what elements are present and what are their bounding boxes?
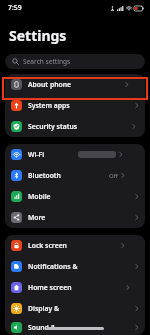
staticText: Settings xyxy=(9,26,67,45)
button[interactable]: More connectivity options xyxy=(5,207,145,228)
staticText: Security status xyxy=(28,122,78,131)
button[interactable]: Home screen xyxy=(5,277,145,298)
staticText: Display & brightness xyxy=(28,304,81,313)
staticText: Notifications & status bar xyxy=(28,262,81,271)
staticText: Search settings xyxy=(23,57,71,66)
staticText: Home screen xyxy=(28,283,72,292)
staticText: Sound & vibration xyxy=(28,323,81,332)
staticText: Wi-Fi xyxy=(28,150,45,159)
staticText: Mobile networks xyxy=(28,192,81,201)
button[interactable]: System apps updater xyxy=(5,95,145,116)
staticText: Lock screen xyxy=(28,241,67,250)
button[interactable]: Notifications & status bar xyxy=(5,256,145,277)
staticText: Off xyxy=(109,172,118,180)
staticText: About phone xyxy=(28,80,71,89)
button[interactable]: Search settings xyxy=(5,54,145,69)
button[interactable]: Lock screen xyxy=(5,235,145,256)
staticText: 7:59 xyxy=(8,3,22,12)
button[interactable]: Sound & vibration xyxy=(5,319,145,335)
button[interactable]: Bluetooth xyxy=(5,165,145,186)
staticText: More connectivity options xyxy=(28,213,81,222)
staticText: Bluetooth xyxy=(28,171,61,180)
button[interactable]: About phone xyxy=(5,74,145,95)
staticText: System apps updater xyxy=(28,101,81,110)
button[interactable]: Mobile networks xyxy=(5,186,145,207)
button[interactable]: Security status xyxy=(5,116,145,137)
button[interactable]: Display & brightness xyxy=(5,298,145,319)
button[interactable]: Wi-Fi xyxy=(5,144,145,165)
